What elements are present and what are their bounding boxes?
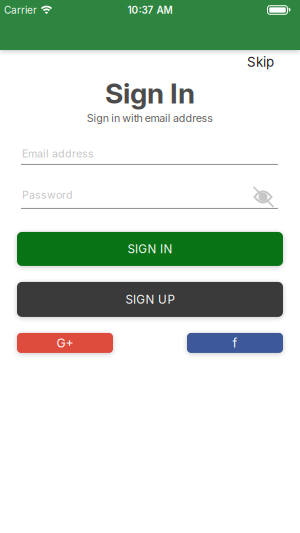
staticText: Carrier (4, 4, 37, 16)
staticText: SIGN IN (128, 242, 172, 256)
staticText: Email address (22, 147, 94, 160)
button[interactable]: Show password (252, 187, 274, 207)
staticText: Sign in with email address (87, 112, 213, 124)
staticText: SIGN UP (126, 292, 174, 306)
staticText: G+ (56, 335, 73, 350)
staticText: Skip (247, 54, 274, 70)
staticText: 10:37 AM (127, 4, 172, 16)
button[interactable]: Skip (247, 54, 274, 70)
staticText: Sign In (105, 77, 195, 110)
button[interactable]: Sign in with Google (17, 333, 113, 353)
button[interactable]: SIGN IN (17, 232, 283, 266)
button[interactable]: SIGN UP (17, 282, 283, 317)
button[interactable]: Sign in with Facebook (187, 333, 283, 353)
staticText: Password (22, 189, 73, 201)
staticText: f (232, 335, 237, 351)
